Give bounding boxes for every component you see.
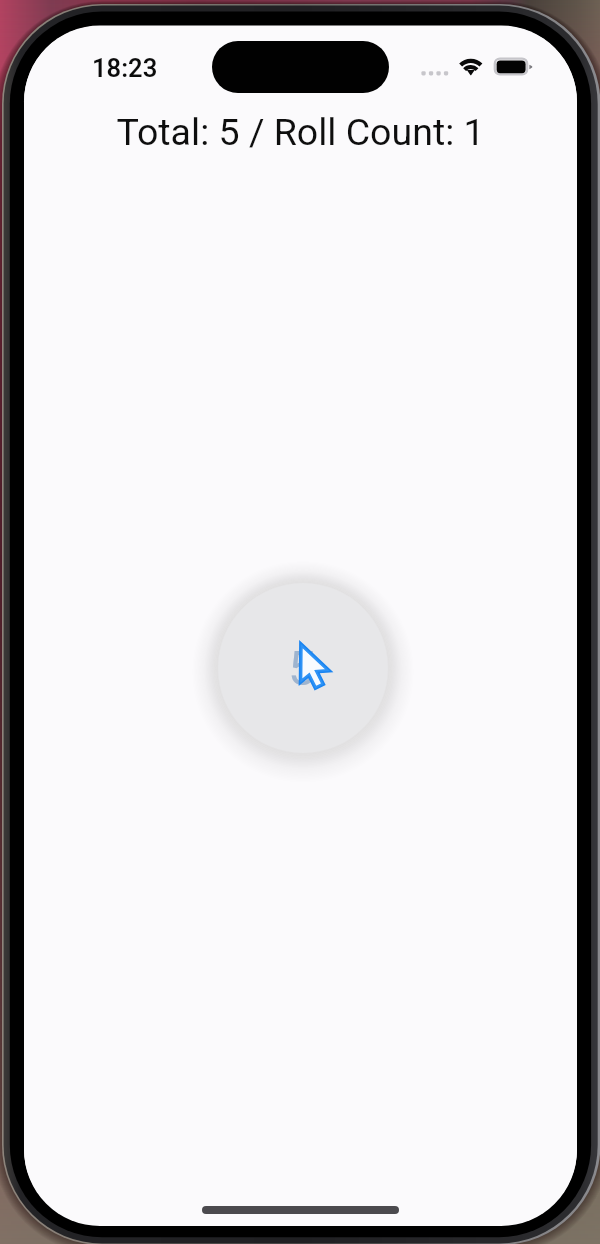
staticText: 5 [288, 640, 316, 697]
staticText: Total: 5 / Roll Count: 1 [116, 110, 485, 154]
button[interactable]: 5 [218, 583, 388, 753]
staticText: 18:23 [92, 53, 158, 83]
